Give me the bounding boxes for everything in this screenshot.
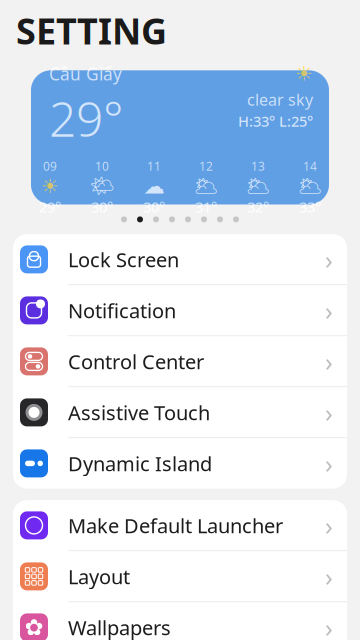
button[interactable]: Assistive Touch [13, 387, 347, 438]
staticText: 12 [199, 158, 213, 174]
staticText: SETTING [16, 7, 167, 54]
staticText: › [325, 560, 333, 593]
staticText: › [325, 447, 333, 480]
staticText: 29° [39, 197, 61, 216]
staticText: 13 [251, 158, 265, 174]
staticText: Lock Screen [68, 246, 179, 273]
staticText: Layout [68, 563, 130, 590]
staticText: 30° [143, 197, 165, 216]
staticText: clear sky [247, 89, 313, 110]
button[interactable]: ✿ [13, 602, 347, 640]
staticText: Wallpapers [68, 614, 171, 640]
button[interactable]: Layout [13, 551, 347, 602]
staticText: Control Center [68, 348, 204, 375]
staticText: 🌥 [193, 175, 218, 197]
staticText: › [325, 345, 333, 378]
button[interactable]: Notification [13, 285, 347, 336]
staticText: 31° [195, 197, 217, 216]
staticText: ✿ [24, 614, 43, 640]
staticText: 33° [299, 197, 321, 216]
staticText: 10 [95, 158, 109, 174]
staticText: H:33° L:25° [238, 111, 313, 131]
staticText: 11 [147, 158, 161, 174]
staticText: ☀ [295, 62, 313, 85]
staticText: 14 [303, 158, 317, 174]
staticText: ☁ [143, 174, 164, 198]
staticText: › [325, 243, 333, 276]
staticText: 🌥 [245, 175, 270, 197]
staticText: Dynamic Island [68, 450, 212, 477]
staticText: › [325, 294, 333, 327]
staticText: 🌥 [297, 175, 322, 197]
button[interactable]: Control Center [13, 336, 347, 387]
staticText: › [325, 611, 333, 640]
staticText: Cầu Giấy [49, 62, 122, 85]
staticText: 30° [91, 197, 113, 216]
staticText: Notification [68, 297, 176, 324]
staticText: 🌤 [89, 175, 114, 197]
staticText: › [325, 509, 333, 542]
button[interactable]: Dynamic Island [13, 438, 347, 488]
staticText: ☀ [41, 175, 59, 197]
button[interactable]: Lock Screen [13, 234, 347, 285]
staticText: 29° [49, 86, 124, 150]
staticText: › [325, 396, 333, 429]
staticText: Assistive Touch [68, 399, 210, 426]
staticText: Make Default Launcher [68, 512, 283, 539]
staticText: 09 [43, 158, 57, 174]
staticText: 32° [247, 197, 269, 216]
button[interactable]: Make Default Launcher [13, 500, 347, 551]
